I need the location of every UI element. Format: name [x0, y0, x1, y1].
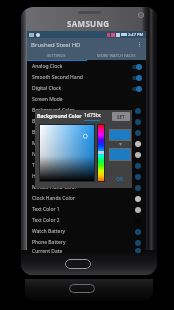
staticText: Numbers Color: [32, 151, 135, 158]
staticText: Clock Hands Color: [32, 195, 135, 202]
staticText: SET: [117, 114, 125, 120]
button[interactable]: More options: [135, 40, 144, 49]
button[interactable]: Watch Battery: [27, 226, 146, 237]
staticText: 1d73bc: [84, 112, 102, 119]
button[interactable]: Phone Battery: [27, 237, 146, 248]
staticText: Screen Mode: [32, 96, 134, 103]
staticText: Smooth Second Hand: [32, 74, 132, 81]
staticText: Phone Battery: [32, 239, 135, 246]
staticText: OK: [116, 176, 124, 183]
staticText: Text Color 1: [32, 206, 135, 213]
staticText: Tick Marks: [32, 162, 135, 169]
button[interactable]: Numbers Color: [27, 149, 146, 160]
staticText: Analog Clock: [32, 63, 132, 70]
button[interactable]: SETTINGS: [27, 51, 86, 60]
staticText: 2:47 PM: [128, 32, 144, 37]
staticText: MORE WATCH FACES: [97, 53, 136, 58]
staticText: Current Date: [32, 248, 135, 253]
button[interactable]: Tick Marks: [27, 160, 146, 171]
staticText: Text Color 2: [32, 217, 135, 224]
staticText: Bezel Color: [32, 118, 135, 125]
button[interactable]: Clock Hands Color: [27, 193, 146, 204]
button[interactable]: Minute Hand Color: [27, 182, 146, 193]
button[interactable]: Digital Clock: [27, 83, 146, 94]
staticText: Marks Color: [32, 140, 135, 147]
button[interactable]: Background Color: [27, 105, 146, 116]
button[interactable]: Background Image: [27, 127, 146, 138]
button[interactable]: Marks Color: [27, 138, 146, 149]
staticText: Watch Battery: [32, 228, 135, 235]
button[interactable]: Current Date: [27, 248, 146, 253]
button[interactable]: Home: [65, 259, 91, 269]
staticText: Background Color: [37, 113, 82, 120]
button[interactable]: MORE WATCH FACES: [86, 51, 146, 60]
staticText: Brushed Steel HD: [31, 41, 81, 49]
staticText: SETTINGS: [47, 53, 66, 58]
staticText: Background Image: [32, 129, 135, 136]
button[interactable]: Smooth Second Hand: [27, 72, 146, 83]
button[interactable]: Text Color 1: [27, 204, 146, 215]
staticText: Hour Hand Color: [32, 173, 135, 180]
button[interactable]: Text Color 2: [27, 215, 146, 226]
button[interactable]: OK: [110, 174, 130, 185]
button[interactable]: Hour Hand Color: [27, 171, 146, 182]
button[interactable]: Bezel Color: [27, 116, 146, 127]
button[interactable]: SET: [112, 112, 130, 121]
staticText: Minute Hand Color: [32, 184, 135, 191]
staticText: Digital Clock: [32, 85, 132, 92]
button[interactable]: Analog Clock: [27, 61, 146, 72]
staticText: Background Color: [32, 107, 135, 114]
staticText: SAMSUNG: [67, 18, 110, 29]
button[interactable]: Screen Mode: [27, 94, 146, 105]
